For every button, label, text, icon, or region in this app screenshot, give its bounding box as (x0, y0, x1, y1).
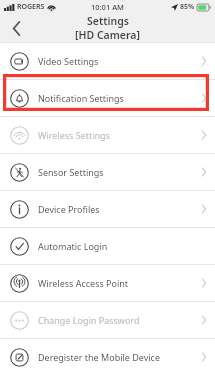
staticText: Sensor Settings (38, 166, 202, 178)
staticText: ROGERS (17, 2, 45, 12)
staticText: Device Profiles (38, 203, 202, 215)
button[interactable]: Back (5, 17, 27, 39)
button[interactable]: Device Profiles (0, 191, 215, 227)
staticText: Wireless Access Point (38, 277, 202, 289)
staticText: 85% (180, 2, 195, 12)
staticText: Change Login Password (38, 314, 202, 326)
staticText: 10:01 AM (91, 2, 124, 12)
button[interactable]: Automatic Login (0, 228, 215, 264)
button[interactable]: Notification Settings (0, 80, 215, 116)
staticText: Settings (87, 14, 129, 28)
button[interactable]: Change Login Password (0, 302, 215, 338)
staticText: [HD Camera] (75, 28, 140, 42)
staticText: Notification Settings (38, 92, 202, 104)
button[interactable]: Deregister the Mobile Device (0, 339, 215, 375)
button[interactable]: Wireless Settings (0, 117, 215, 153)
staticText: Deregister the Mobile Device (38, 351, 202, 363)
button[interactable]: Video Settings (0, 43, 215, 79)
button[interactable]: Sensor Settings (0, 154, 215, 190)
staticText: Automatic Login (38, 240, 202, 252)
button[interactable]: Wireless Access Point (0, 265, 215, 301)
staticText: Video Settings (38, 55, 202, 67)
staticText: Wireless Settings (38, 129, 202, 141)
